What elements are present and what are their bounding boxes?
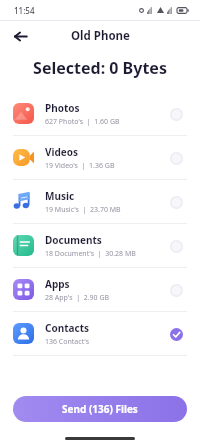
button[interactable]: Videos [0, 136, 200, 179]
staticText: Videos [45, 145, 79, 159]
button[interactable]: Contacts [0, 312, 200, 355]
staticText: Selected: 0 Bytes [0, 57, 200, 79]
staticText: 28 App's | 2.90 GB [45, 293, 110, 303]
staticText: 19 Video's | 1.36 GB [45, 161, 115, 171]
staticText: 11:54 [14, 5, 35, 16]
staticText: Documents [45, 233, 102, 247]
staticText: Apps [45, 277, 70, 291]
staticText: 19 Music's | 23.70 MB [45, 205, 121, 215]
button[interactable]: Send (136) Files [13, 396, 187, 422]
button[interactable]: Apps [0, 268, 200, 311]
button[interactable]: Photos [0, 92, 200, 135]
staticText: 18 Document's | 30.28 MB [45, 249, 136, 259]
staticText: Contacts [45, 321, 90, 335]
staticText: Old Phone [71, 28, 130, 44]
button[interactable]: Not selected [165, 103, 187, 125]
button[interactable]: Not selected [165, 235, 187, 257]
button[interactable]: Not selected [165, 147, 187, 169]
staticText: Music [45, 189, 75, 203]
button[interactable]: Music [0, 180, 200, 223]
button[interactable]: Back [6, 22, 34, 50]
button[interactable]: Not selected [165, 279, 187, 301]
staticText: 136 Contact's [45, 337, 90, 347]
staticText: Send (136) Files [62, 402, 138, 416]
button[interactable]: Selected [165, 323, 187, 345]
staticText: 627 Photo's | 1.60 GB [45, 117, 120, 127]
staticText: Photos [45, 101, 80, 115]
button[interactable]: Not selected [165, 191, 187, 213]
button[interactable]: Documents [0, 224, 200, 267]
